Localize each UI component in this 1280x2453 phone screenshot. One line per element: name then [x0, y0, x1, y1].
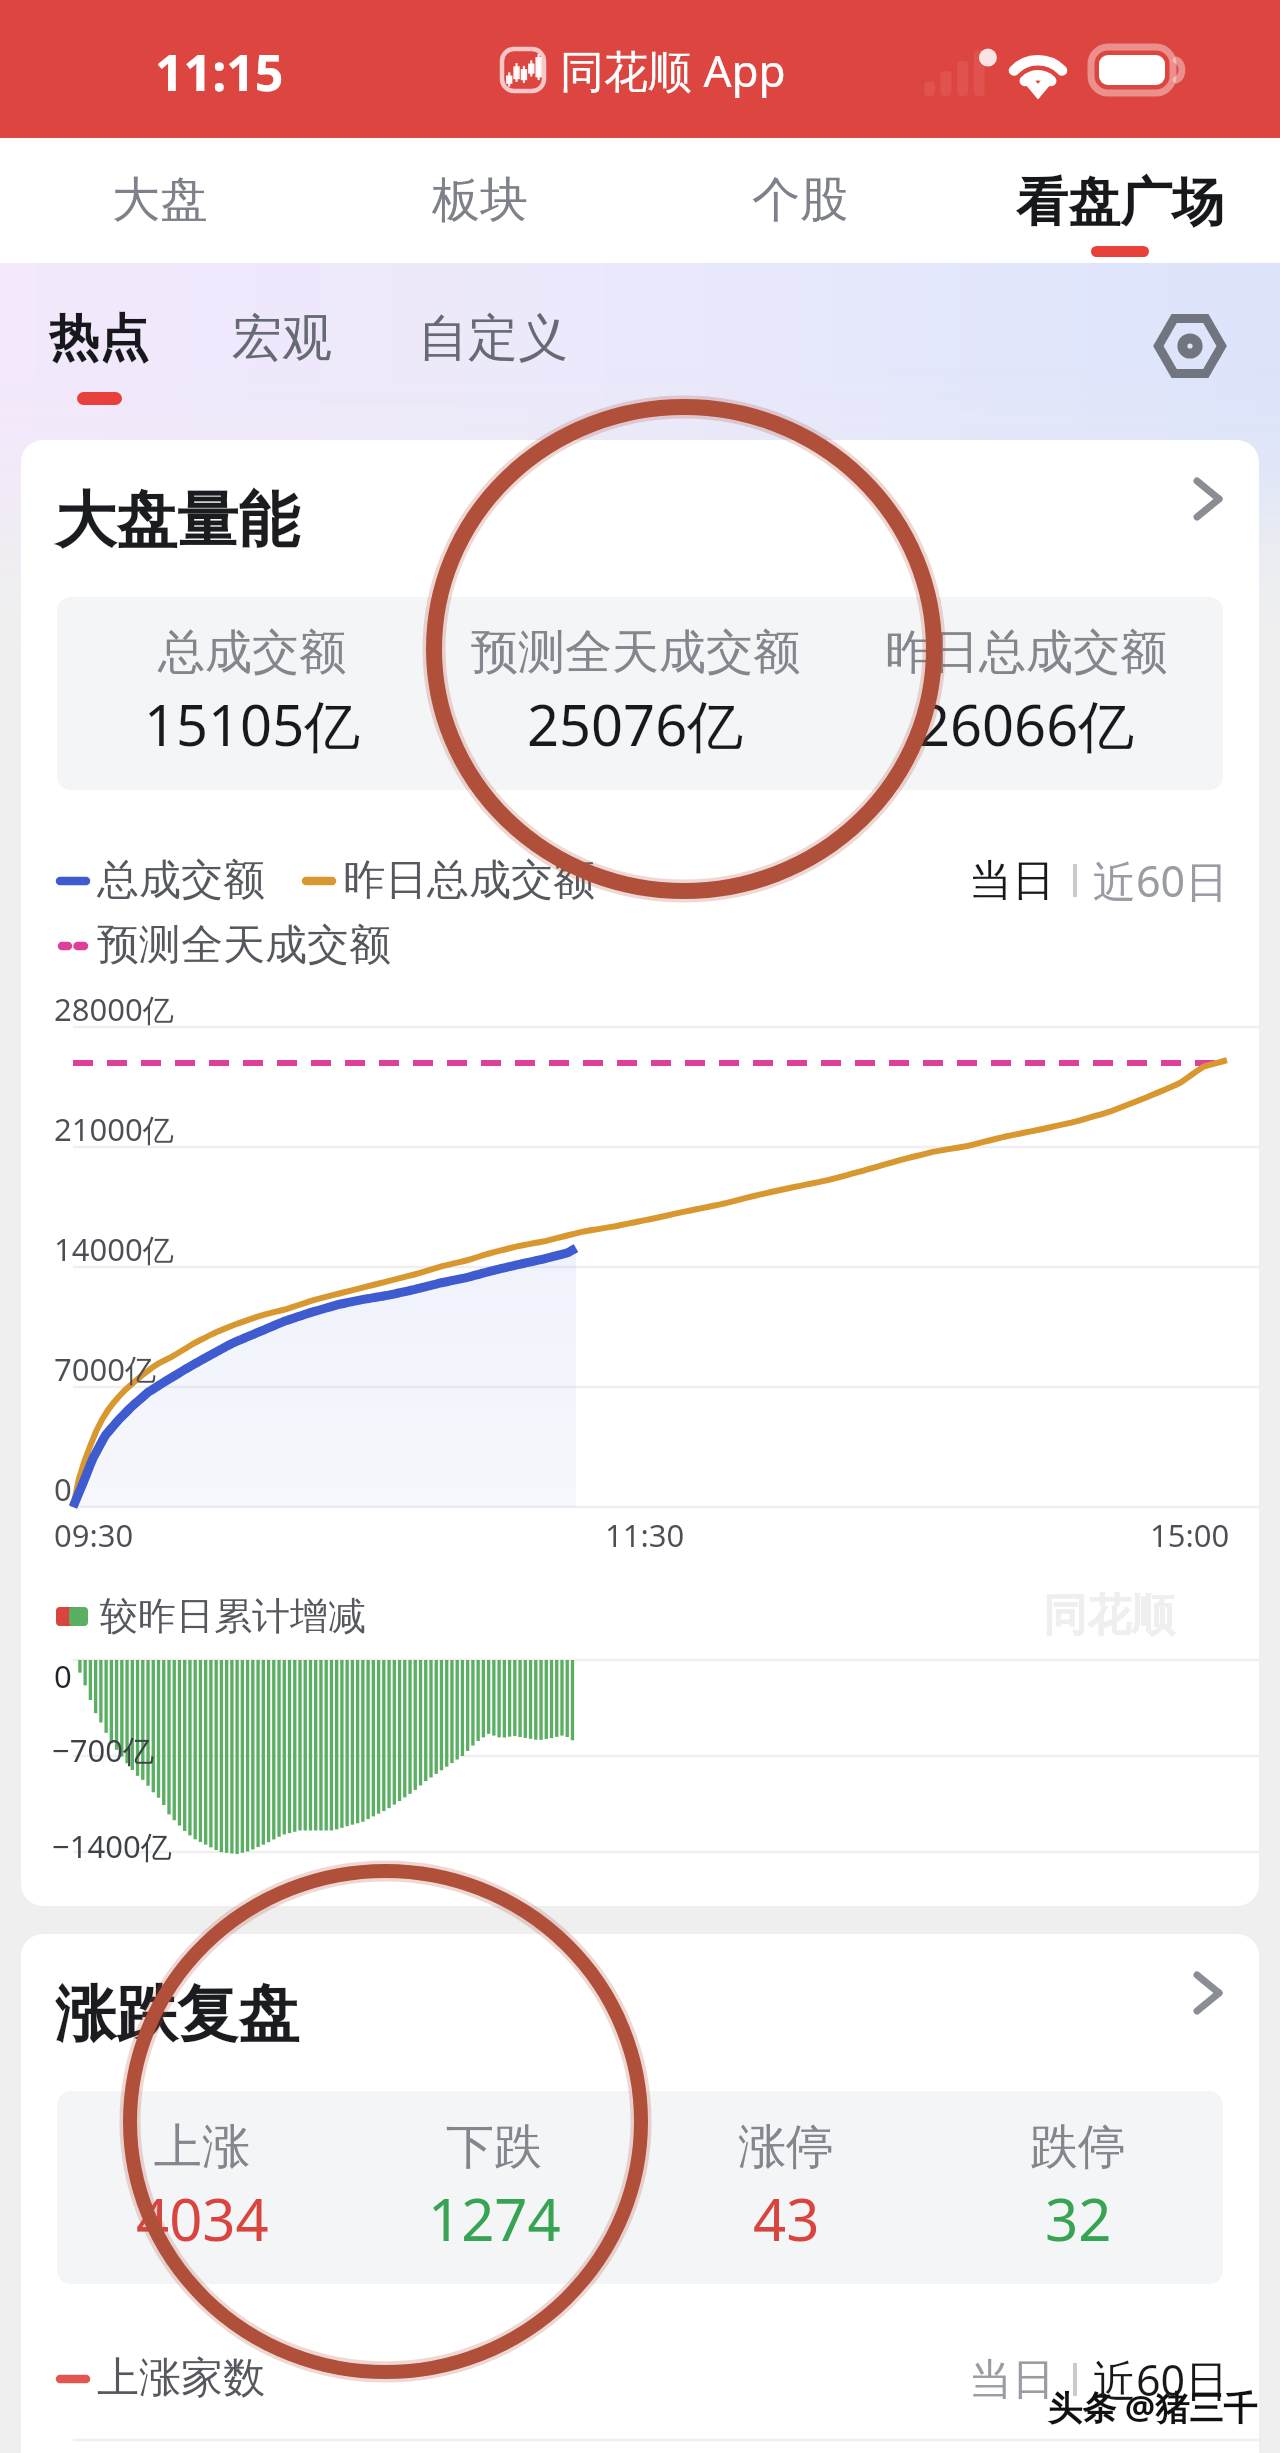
button[interactable]: 近60日	[1093, 851, 1229, 910]
staticText: 43	[753, 2179, 820, 2258]
button[interactable]: 上涨	[57, 2091, 347, 2284]
staticText: 25076亿	[527, 686, 744, 762]
button[interactable]: 大盘量能	[21, 440, 1259, 558]
button[interactable]: 涨跌复盘	[21, 1934, 1259, 2052]
staticText: 跌停	[1030, 2117, 1126, 2177]
staticText: 上涨家数	[97, 2352, 265, 2405]
staticText: 预测全天成交额	[471, 623, 800, 682]
button[interactable]: 看盘广场	[960, 138, 1280, 263]
button[interactable]: 宏观	[232, 307, 332, 405]
staticText: 同花顺 App	[560, 40, 786, 100]
staticText: 1274	[428, 2179, 561, 2258]
staticText: 大盘量能	[55, 482, 299, 559]
staticText: 7000亿	[54, 1348, 156, 1390]
staticText: 个股	[752, 170, 848, 230]
staticText: 同花顺	[1043, 1588, 1175, 1643]
button[interactable]: 总成交额	[57, 597, 447, 790]
staticText: 昨日总成交额	[343, 854, 595, 907]
staticText: 总成交额	[158, 623, 346, 682]
staticText: 总成交额	[97, 854, 265, 907]
staticText: 涨停	[738, 2117, 834, 2177]
staticText: 21000亿	[54, 1108, 174, 1150]
button[interactable]: 个股	[640, 138, 960, 263]
staticText: 板块	[432, 170, 528, 230]
staticText: 宏观	[232, 307, 332, 370]
staticText: 较昨日累计增减	[100, 1592, 366, 1640]
staticText: 热点	[49, 307, 149, 370]
staticText: 自定义	[418, 307, 568, 370]
staticText: 0	[54, 1655, 72, 1697]
button[interactable]: 自定义	[418, 307, 568, 405]
staticText: 32	[1045, 2179, 1112, 2258]
button[interactable]: 当日	[969, 2353, 1055, 2407]
staticText: 下跌	[446, 2117, 542, 2177]
staticText: 大盘	[112, 170, 208, 230]
button[interactable]: 预测全天成交额	[440, 597, 830, 790]
staticText: 看盘广场	[1016, 170, 1224, 236]
button[interactable]: 板块	[320, 138, 640, 263]
staticText: 涨跌复盘	[55, 1976, 299, 2053]
staticText: 昨日总成交额	[885, 623, 1167, 682]
staticText: 头条 @猪三千	[1048, 2384, 1258, 2430]
button[interactable]: 跌停	[933, 2091, 1223, 2284]
staticText: 28000亿	[54, 988, 174, 1030]
staticText: 09:30	[54, 1514, 134, 1556]
staticText: 26066亿	[918, 686, 1135, 762]
staticText: 15105亿	[144, 686, 361, 762]
staticText: 4034	[136, 2179, 269, 2258]
button[interactable]: Settings	[1157, 313, 1223, 379]
staticText: 0	[54, 1468, 72, 1510]
button[interactable]: 下跌	[349, 2091, 639, 2284]
staticText: 14000亿	[54, 1228, 174, 1270]
staticText: −1400亿	[52, 1825, 172, 1867]
button[interactable]: 当日	[969, 854, 1055, 908]
staticText: 预测全天成交额	[97, 919, 391, 972]
staticText: 上涨	[154, 2117, 250, 2177]
button[interactable]: 昨日总成交额	[829, 597, 1223, 790]
staticText: 11:15	[155, 38, 284, 106]
staticText: 15:00	[1150, 1514, 1230, 1556]
button[interactable]: 大盘	[0, 138, 320, 263]
button[interactable]: 近60日	[1093, 2350, 1229, 2409]
staticText: 11:30	[605, 1514, 685, 1556]
button[interactable]: 涨停	[641, 2091, 931, 2284]
button[interactable]: 热点	[49, 307, 149, 405]
staticText: −700亿	[52, 1729, 154, 1771]
